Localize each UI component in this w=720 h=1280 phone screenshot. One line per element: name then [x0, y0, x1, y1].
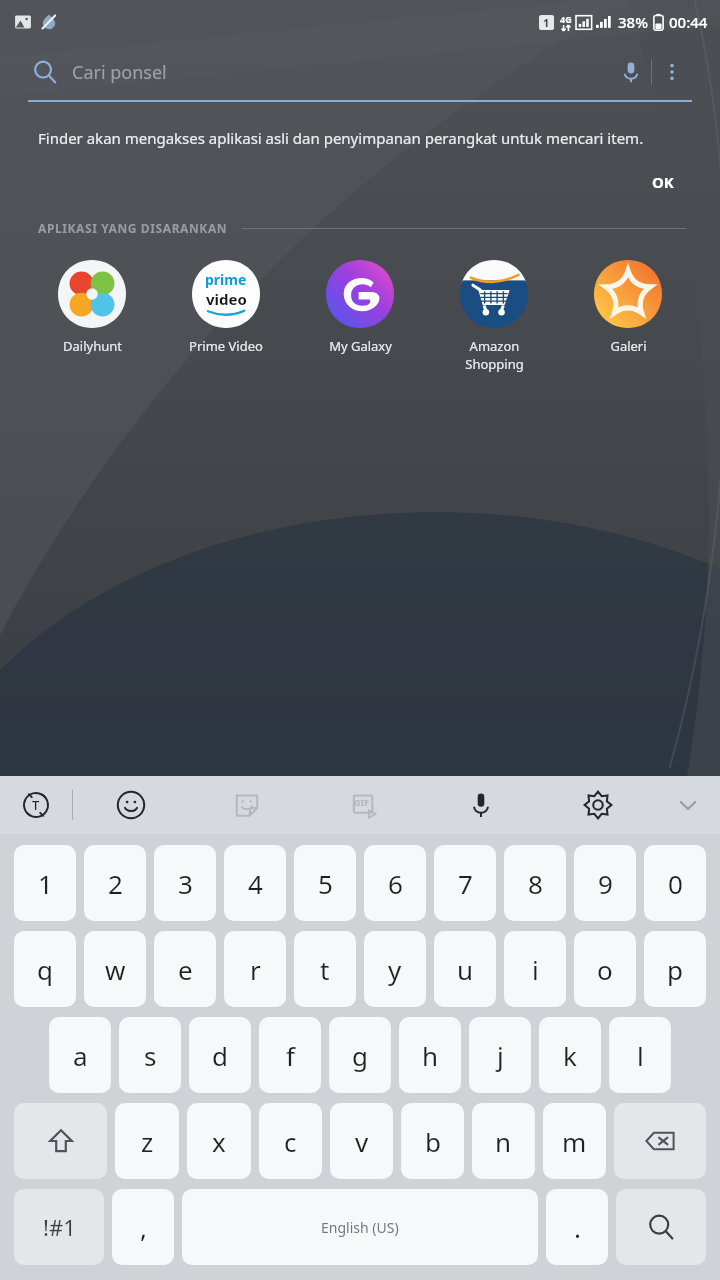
staticText: o	[597, 952, 613, 987]
button[interactable]: 2	[84, 845, 146, 921]
button[interactable]: Amazon Shopping	[436, 258, 552, 375]
button[interactable]: a	[49, 1017, 111, 1093]
button[interactable]: .	[546, 1189, 608, 1265]
button[interactable]: Shift	[14, 1103, 107, 1179]
staticText: 6	[388, 866, 403, 901]
staticText: Finder akan mengakses aplikasi asli dan …	[38, 128, 644, 148]
staticText: z	[141, 1124, 154, 1159]
button[interactable]: 7	[434, 845, 496, 921]
button[interactable]: Voice search	[611, 52, 651, 92]
button[interactable]: x	[187, 1103, 251, 1179]
button[interactable]: Dailyhunt	[34, 258, 150, 357]
button[interactable]: Space	[182, 1189, 538, 1265]
staticText: T	[32, 796, 40, 814]
staticText: ,	[140, 1210, 147, 1245]
button[interactable]: 0	[644, 845, 706, 921]
button[interactable]: Voice input	[422, 776, 539, 834]
button[interactable]: Search	[616, 1189, 706, 1265]
button[interactable]: 8	[504, 845, 566, 921]
button[interactable]: GIF	[305, 776, 422, 834]
button[interactable]: Collapse toolbar	[656, 776, 720, 834]
staticText: 3	[178, 866, 193, 901]
button[interactable]: ,	[112, 1189, 174, 1265]
button[interactable]: w	[84, 931, 146, 1007]
button[interactable]: o	[574, 931, 636, 1007]
button[interactable]: v	[330, 1103, 393, 1179]
staticText: Prime Video	[189, 337, 263, 355]
button[interactable]: 5	[294, 845, 356, 921]
staticText: g	[352, 1038, 368, 1073]
button[interactable]: c	[259, 1103, 322, 1179]
staticText: s	[144, 1038, 157, 1073]
button[interactable]: s	[119, 1017, 181, 1093]
staticText: q	[37, 952, 53, 987]
staticText: l	[637, 1038, 644, 1073]
staticText: b	[425, 1124, 441, 1159]
button[interactable]: p	[644, 931, 706, 1007]
staticText: 2	[108, 866, 123, 901]
staticText: APLIKASI YANG DISARANKAN	[38, 220, 228, 236]
staticText: 7	[458, 866, 473, 901]
staticText: h	[422, 1038, 439, 1073]
staticText: x	[212, 1124, 226, 1159]
staticText: 8	[528, 866, 543, 901]
button[interactable]: q	[14, 931, 76, 1007]
button[interactable]: l	[609, 1017, 671, 1093]
button[interactable]: prime	[168, 258, 284, 357]
button[interactable]: 9	[574, 845, 636, 921]
button[interactable]: Keyboard settings	[539, 776, 656, 834]
staticText: i	[532, 952, 539, 987]
button[interactable]: Translate	[0, 776, 72, 834]
button[interactable]: My Galaxy	[302, 258, 418, 357]
staticText: n	[495, 1124, 512, 1159]
button[interactable]: d	[189, 1017, 251, 1093]
staticText: 5	[318, 866, 333, 901]
staticText: Galeri	[610, 337, 647, 355]
button[interactable]: y	[364, 931, 426, 1007]
button[interactable]: n	[472, 1103, 535, 1179]
button[interactable]: 1	[14, 845, 76, 921]
button[interactable]: z	[115, 1103, 179, 1179]
button[interactable]: g	[329, 1017, 391, 1093]
staticText: v	[355, 1124, 369, 1159]
staticText: r	[250, 952, 261, 987]
button[interactable]: 3	[154, 845, 216, 921]
staticText: u	[457, 952, 474, 987]
button[interactable]: b	[401, 1103, 464, 1179]
staticText: a	[73, 1038, 88, 1073]
button[interactable]: Emoji	[73, 776, 189, 834]
button[interactable]: e	[154, 931, 216, 1007]
button[interactable]: Symbols	[14, 1189, 104, 1265]
staticText: 0	[668, 866, 683, 901]
button[interactable]: i	[504, 931, 566, 1007]
button[interactable]: OK	[644, 166, 682, 198]
staticText: !#1	[43, 1212, 76, 1242]
staticText: prime	[205, 270, 247, 289]
staticText: j	[497, 1038, 504, 1073]
staticText: p	[667, 952, 683, 987]
button[interactable]: t	[294, 931, 356, 1007]
staticText: 1	[38, 866, 53, 901]
button[interactable]: k	[539, 1017, 601, 1093]
staticText: English (US)	[321, 1218, 399, 1237]
button[interactable]: 6	[364, 845, 426, 921]
button[interactable]: Galeri	[570, 258, 686, 357]
staticText: y	[388, 952, 402, 987]
staticText: Dailyhunt	[63, 337, 122, 355]
button[interactable]: 4	[224, 845, 286, 921]
button[interactable]: Backspace	[614, 1103, 706, 1179]
button[interactable]: m	[543, 1103, 606, 1179]
staticText: m	[562, 1124, 587, 1159]
staticText: My Galaxy	[329, 337, 392, 355]
button[interactable]: More options	[652, 52, 692, 92]
staticText: w	[105, 952, 126, 987]
staticText: f	[286, 1038, 295, 1073]
button[interactable]: f	[259, 1017, 321, 1093]
button[interactable]: u	[434, 931, 496, 1007]
staticText: 00:44	[669, 12, 708, 32]
button[interactable]: r	[224, 931, 286, 1007]
button[interactable]: Search	[28, 55, 62, 89]
button[interactable]: j	[469, 1017, 531, 1093]
button[interactable]: Stickers	[189, 776, 305, 834]
button[interactable]: h	[399, 1017, 461, 1093]
